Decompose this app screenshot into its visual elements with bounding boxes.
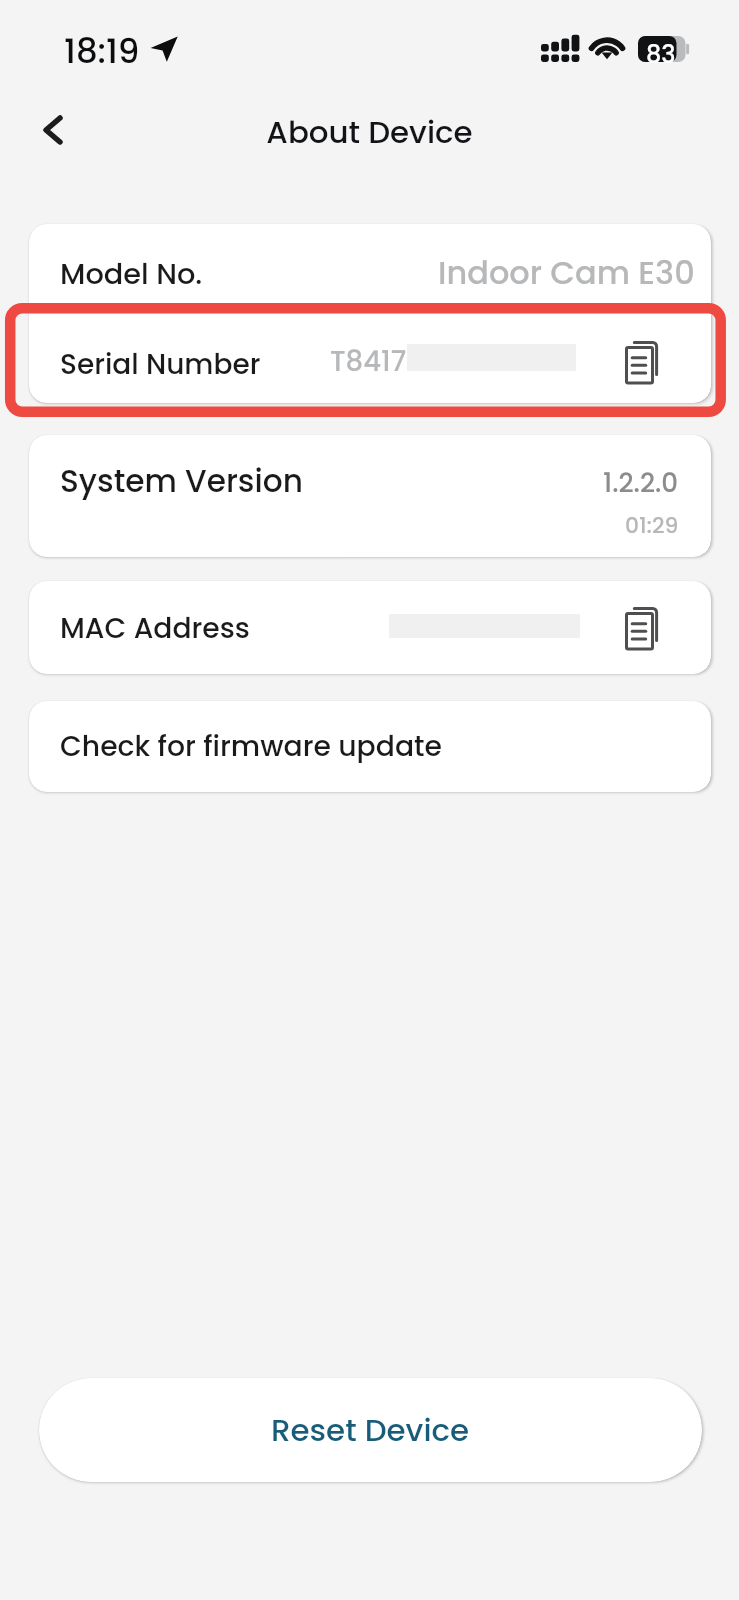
staticText: 18:19 xyxy=(64,27,140,75)
staticText: Reset Device xyxy=(271,1409,470,1452)
staticText: MAC Address xyxy=(60,608,250,647)
button[interactable] xyxy=(29,224,711,314)
staticText: 1.2.2.0 xyxy=(603,464,679,501)
button[interactable] xyxy=(29,581,711,674)
button[interactable]: Back xyxy=(30,107,76,153)
staticText: System Version xyxy=(60,459,303,503)
button[interactable]: Reset Device xyxy=(39,1378,702,1482)
staticText: T8417 xyxy=(330,342,407,381)
staticText: 01:29 xyxy=(625,510,679,541)
staticText: Model No. xyxy=(60,254,203,294)
button[interactable]: Copy xyxy=(616,600,669,658)
staticText: Serial Number xyxy=(60,345,261,384)
button[interactable] xyxy=(29,701,711,792)
button[interactable]: Copy xyxy=(616,334,669,392)
button[interactable] xyxy=(29,314,711,403)
staticText: About Device xyxy=(266,111,473,154)
staticText: 83 xyxy=(646,38,676,64)
staticText: Indoor Cam E30 xyxy=(438,250,695,295)
staticText: Check for firmware update xyxy=(60,726,442,766)
